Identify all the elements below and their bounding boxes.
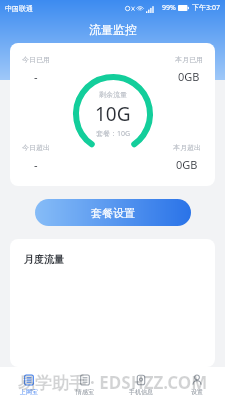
staticText: 上网宝: [20, 388, 38, 396]
button[interactable]: 上网宝: [0, 372, 57, 396]
staticText: -: [34, 157, 38, 172]
staticText: 下午3:07: [192, 3, 220, 13]
staticText: 0GB: [176, 157, 198, 172]
button[interactable]: 手机信息: [113, 372, 169, 396]
staticText: 0GB: [178, 69, 200, 84]
staticText: 中国联通: [5, 4, 33, 13]
staticText: 套餐设置: [91, 206, 135, 220]
staticText: 99%: [162, 3, 176, 13]
staticText: 今日超出: [22, 143, 50, 152]
staticText: 流量监控: [89, 22, 137, 37]
button[interactable]: 设置: [169, 372, 225, 396]
button[interactable]: 套餐设置: [35, 199, 191, 226]
staticText: -: [34, 69, 38, 84]
staticText: 情感宝: [76, 388, 94, 396]
staticText: 易学助手 · EDSHZZ.COM: [0, 371, 225, 394]
staticText: 10G: [95, 101, 131, 127]
staticText: 剩余流量: [99, 90, 127, 99]
staticText: 月度流量: [24, 253, 64, 266]
staticText: 手机信息: [129, 388, 153, 396]
button[interactable]: 情感宝: [57, 372, 113, 396]
staticText: 本月已用: [175, 55, 203, 64]
staticText: 设置: [191, 388, 203, 396]
staticText: 套餐：10G: [96, 129, 131, 139]
staticText: 本月超出: [173, 143, 201, 152]
staticText: 今日已用: [22, 55, 50, 64]
